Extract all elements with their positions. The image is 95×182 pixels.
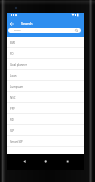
button[interactable]: Lumpsum <box>7 81 84 92</box>
staticText: PPF <box>10 107 15 111</box>
button[interactable]: EMI <box>7 37 84 48</box>
button[interactable]: NSC <box>7 92 84 103</box>
button[interactable]: FD <box>7 48 84 59</box>
staticText: NSC <box>10 96 16 100</box>
staticText: Goal planner <box>10 63 27 67</box>
staticText: EMI <box>10 41 16 45</box>
button[interactable]: PPF <box>7 103 84 114</box>
button[interactable]: RD <box>7 114 84 125</box>
staticText: Loan <box>10 74 17 78</box>
staticText: SIP <box>10 129 15 133</box>
staticText: RD <box>10 118 14 122</box>
button[interactable]: Back <box>7 154 32 170</box>
button[interactable]: Search <box>8 28 81 33</box>
button[interactable]: Home <box>32 154 58 170</box>
button[interactable]: Smart SIP <box>7 136 84 147</box>
staticText: Smart SIP <box>10 140 23 144</box>
staticText: Lumpsum <box>10 85 24 89</box>
staticText: Search <box>21 21 33 26</box>
button[interactable]: Loan <box>7 70 84 81</box>
button[interactable]: Back <box>7 19 16 28</box>
button[interactable]: Goal planner <box>7 59 84 70</box>
staticText: Search <box>14 29 75 32</box>
button[interactable]: Recent apps <box>58 154 84 170</box>
button[interactable]: SIP <box>7 125 84 136</box>
staticText: FD <box>10 52 14 56</box>
